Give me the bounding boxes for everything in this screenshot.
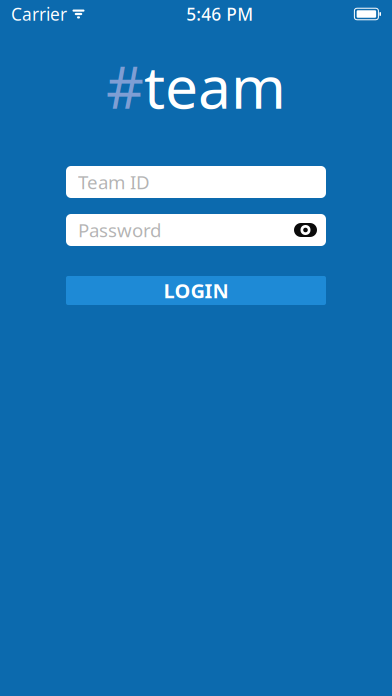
button[interactable]: LOGIN	[66, 276, 326, 305]
staticText: LOGIN	[163, 277, 228, 304]
staticText: Carrier	[11, 2, 67, 25]
staticText: Team ID	[78, 170, 150, 194]
staticText: #	[106, 47, 144, 125]
staticText: Password	[78, 218, 161, 242]
staticText: team	[144, 47, 286, 125]
button[interactable]: Password	[66, 214, 326, 246]
staticText: 5:46 PM	[186, 2, 253, 25]
button[interactable]: Team ID	[66, 166, 326, 198]
